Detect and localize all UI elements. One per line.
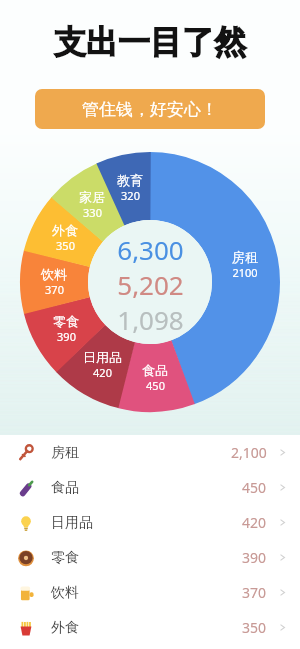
staticText: 370 bbox=[242, 583, 267, 602]
button[interactable]: 饮料 bbox=[0, 575, 300, 610]
button[interactable]: 食品 bbox=[0, 470, 300, 505]
button[interactable]: 外食 bbox=[0, 610, 300, 645]
staticText: 食品 bbox=[51, 479, 79, 497]
other: Open 日用品 bbox=[278, 518, 287, 527]
staticText: 350 bbox=[242, 618, 267, 637]
staticText: 外食 bbox=[52, 222, 78, 238]
staticText: 零食 bbox=[53, 313, 79, 329]
staticText: 教育 bbox=[117, 172, 143, 188]
staticText: 390 bbox=[242, 548, 267, 567]
other: Open 零食 bbox=[278, 553, 287, 562]
staticText: 390 bbox=[57, 329, 76, 344]
staticText: 管住钱，好安心！ bbox=[82, 99, 218, 120]
staticText: 350 bbox=[56, 238, 75, 253]
other: Open 房租 bbox=[278, 448, 287, 457]
staticText: 330 bbox=[83, 205, 102, 220]
staticText: 食品 bbox=[142, 362, 168, 378]
staticText: 日用品 bbox=[51, 514, 93, 532]
staticText: 日用品 bbox=[83, 349, 122, 365]
button[interactable]: 房租 bbox=[0, 435, 300, 470]
staticText: 支出一目了然 bbox=[54, 22, 246, 62]
staticText: 450 bbox=[242, 478, 267, 497]
button[interactable]: 管住钱，好安心！ bbox=[35, 89, 265, 129]
staticText: 6,300 bbox=[117, 232, 184, 267]
other: Open 食品 bbox=[278, 483, 287, 492]
staticText: 饮料 bbox=[51, 584, 79, 602]
button[interactable]: 零食 bbox=[0, 540, 300, 575]
staticText: 450 bbox=[146, 378, 165, 393]
button[interactable]: 日用品 bbox=[0, 505, 300, 540]
other: Open 饮料 bbox=[278, 588, 287, 597]
staticText: 420 bbox=[93, 365, 112, 380]
staticText: 2,100 bbox=[231, 443, 267, 462]
other: Open 外食 bbox=[278, 623, 287, 632]
staticText: 房租 bbox=[51, 444, 79, 462]
staticText: 370 bbox=[45, 282, 64, 297]
staticText: 家居 bbox=[79, 189, 105, 205]
staticText: 1,098 bbox=[117, 302, 184, 337]
staticText: 5,202 bbox=[117, 267, 184, 302]
staticText: 房租 bbox=[232, 249, 258, 265]
staticText: 2100 bbox=[232, 265, 258, 280]
staticText: 零食 bbox=[51, 549, 79, 567]
staticText: 饮料 bbox=[41, 266, 67, 282]
staticText: 320 bbox=[121, 188, 140, 203]
staticText: 外食 bbox=[51, 619, 79, 637]
staticText: 420 bbox=[242, 513, 267, 532]
